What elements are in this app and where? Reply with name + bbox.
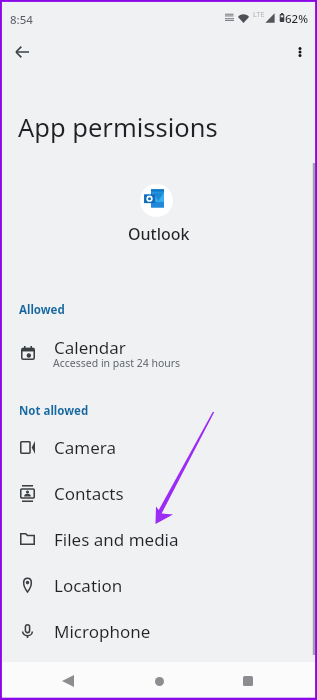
staticText: Files and media — [54, 528, 179, 551]
button[interactable]: Back — [6, 36, 38, 68]
button[interactable]: Microphone — [0, 608, 317, 654]
staticText: LTE — [253, 10, 265, 20]
staticText: Outlook — [128, 223, 190, 245]
staticText: App permissions — [18, 110, 218, 145]
staticText: Calendar — [54, 336, 126, 359]
button[interactable]: Recents — [227, 662, 269, 700]
button[interactable]: More options — [284, 36, 316, 68]
staticText: Not allowed — [19, 403, 89, 419]
button[interactable]: Location — [0, 562, 317, 608]
staticText: Contacts — [54, 482, 124, 505]
button[interactable]: Contacts — [0, 470, 317, 516]
button[interactable]: Back — [47, 662, 89, 700]
staticText: Accessed in past 24 hours — [53, 356, 181, 370]
staticText: 62% — [285, 11, 308, 27]
staticText: Camera — [54, 436, 116, 459]
button[interactable]: Files and media — [0, 516, 317, 562]
button[interactable]: Camera — [0, 424, 317, 470]
button[interactable]: Calendar — [0, 333, 317, 379]
button[interactable]: Home — [138, 662, 180, 700]
staticText: Location — [54, 574, 123, 597]
staticText: 8:54 — [10, 12, 33, 28]
staticText: Allowed — [19, 302, 65, 318]
staticText: Microphone — [54, 620, 151, 643]
